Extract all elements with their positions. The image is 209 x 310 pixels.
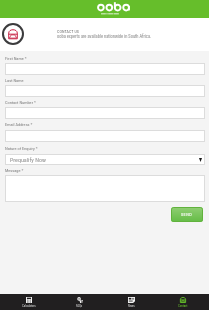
other: FAQs bbox=[77, 297, 83, 303]
staticText: Message * bbox=[5, 168, 24, 173]
button[interactable] bbox=[5, 107, 205, 119]
other: Calculators bbox=[26, 297, 32, 303]
staticText: Nature of Enquiry * bbox=[5, 146, 38, 151]
staticText: Prequalify Now bbox=[10, 156, 46, 163]
button[interactable]: Prequalify Now bbox=[5, 154, 205, 165]
staticText: Last Name bbox=[5, 78, 24, 83]
other: Contact us bbox=[2, 23, 24, 45]
other: Contact bbox=[180, 297, 186, 303]
staticText: ooba experts are available nationwide in… bbox=[57, 34, 152, 39]
staticText: First Name * bbox=[5, 56, 27, 61]
other: News bbox=[128, 297, 135, 303]
button[interactable]: SEND bbox=[171, 207, 203, 222]
button[interactable] bbox=[5, 85, 205, 97]
staticText: FAQs bbox=[76, 304, 83, 308]
staticText: Email Address * bbox=[5, 122, 33, 127]
button[interactable]: Contact bbox=[157, 294, 209, 310]
button[interactable]: FAQs bbox=[54, 294, 105, 310]
staticText: Calculators bbox=[22, 304, 36, 308]
staticText: SEND bbox=[181, 212, 193, 217]
button[interactable]: News bbox=[105, 294, 157, 310]
button[interactable] bbox=[5, 175, 205, 202]
staticText: CONTACT US bbox=[57, 29, 79, 34]
other: ooba - experts in home finance bbox=[97, 2, 128, 16]
staticText: Contact Number * bbox=[5, 100, 36, 105]
button[interactable] bbox=[5, 63, 205, 75]
button[interactable] bbox=[5, 130, 205, 142]
staticText: News bbox=[128, 304, 135, 308]
button[interactable]: Calculators bbox=[3, 294, 54, 310]
staticText: Contact bbox=[178, 304, 188, 308]
